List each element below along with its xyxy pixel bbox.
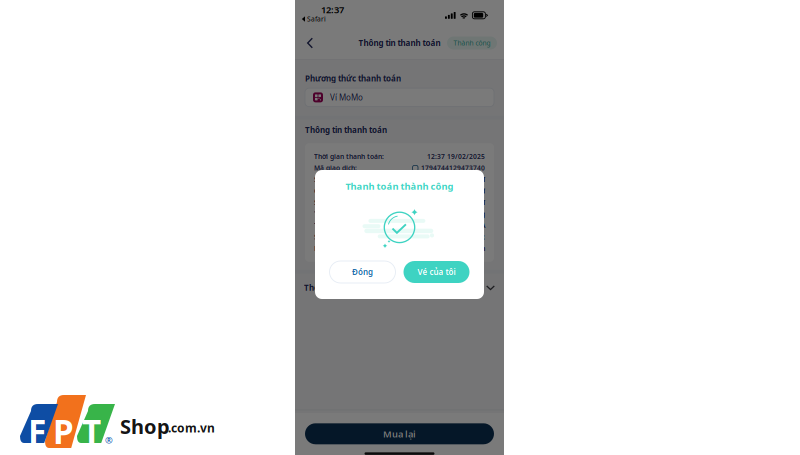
staticText: Thông tin đơn hàng (304, 282, 380, 293)
staticText: Mua lại (383, 428, 416, 440)
staticText: P (53, 409, 74, 453)
staticText: Thông tin thanh toán (305, 125, 387, 135)
staticText: 09xxxxxxxx (445, 233, 485, 241)
staticText: Safari (307, 15, 326, 23)
staticText: Vé của tôi (417, 267, 455, 277)
staticText: Thành công (448, 210, 485, 218)
button[interactable]: Vé của tôi (403, 261, 469, 283)
staticText: Phương thức thanh toán (305, 73, 401, 84)
staticText: Shop (120, 413, 170, 440)
button[interactable]: Back (298, 28, 322, 58)
staticText: 0 đ (475, 187, 485, 195)
staticText: Nguyễn Văn A (440, 221, 485, 230)
staticText: 2.290.000 đ (447, 175, 485, 184)
staticText: T (82, 409, 101, 453)
staticText: 12:37 (321, 3, 344, 16)
staticText: ® (105, 434, 113, 446)
staticText: Thông tin thanh toán (358, 38, 440, 48)
staticText: Số tiền: (314, 175, 339, 184)
staticText: Ví MoMo (330, 92, 363, 103)
staticText: Mã giao dịch: (314, 164, 357, 172)
staticText: Đóng (352, 267, 373, 277)
staticText: Thành công (453, 39, 490, 47)
staticText: 12:37 19/02/2025 (427, 152, 485, 161)
staticText: Số tiền thanh toán: (314, 198, 377, 207)
staticText: Thanh toán thành công (345, 180, 453, 192)
staticText: abc@gmail.com (435, 244, 485, 253)
staticText: Số điện thoại: (314, 233, 359, 241)
staticText: Giảm giá: (314, 187, 345, 195)
staticText: Thời gian thanh toán: (314, 152, 384, 161)
button[interactable]: Mua lại (305, 423, 494, 444)
staticText: .com.vn (168, 420, 215, 436)
button[interactable]: Đóng (329, 261, 395, 283)
staticText: Trạng thái: (314, 210, 349, 218)
staticText: F (28, 409, 46, 453)
staticText: 2.290.000 đ (447, 198, 485, 207)
staticText: Email: (314, 244, 334, 253)
staticText: Tên khách hàng: (314, 221, 366, 230)
staticText: 1794744129473740 (421, 164, 485, 172)
